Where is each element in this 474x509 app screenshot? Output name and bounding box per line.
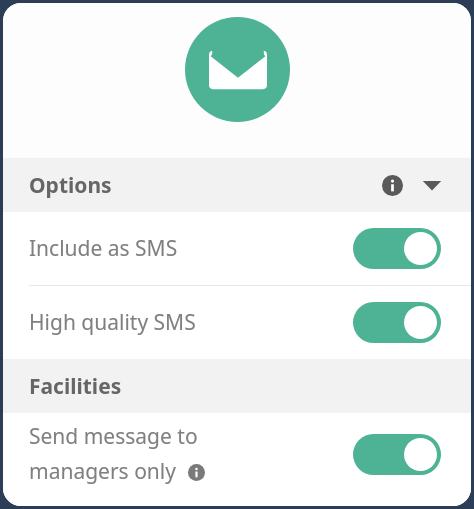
staticText: Include as SMS <box>29 234 353 263</box>
button[interactable]: Message <box>185 17 290 122</box>
staticText: Options <box>29 171 112 200</box>
staticText: High quality SMS <box>29 308 353 337</box>
button[interactable]: Information <box>379 172 405 198</box>
button[interactable]: Toggle on <box>353 228 441 269</box>
staticText: Send message to <box>29 422 198 451</box>
button[interactable]: Facilities <box>3 359 471 413</box>
button[interactable]: Send message to <box>3 413 471 495</box>
button[interactable]: Toggle on <box>353 302 441 343</box>
button[interactable]: Toggle on <box>353 434 441 475</box>
button[interactable]: Options <box>3 158 471 212</box>
button[interactable]: High quality SMS <box>3 286 471 359</box>
button[interactable]: Collapse section <box>419 172 445 198</box>
staticText: managers only <box>29 457 176 486</box>
button[interactable]: Information <box>186 462 206 482</box>
staticText: Facilities <box>29 372 122 401</box>
button[interactable]: Include as SMS <box>3 212 471 285</box>
